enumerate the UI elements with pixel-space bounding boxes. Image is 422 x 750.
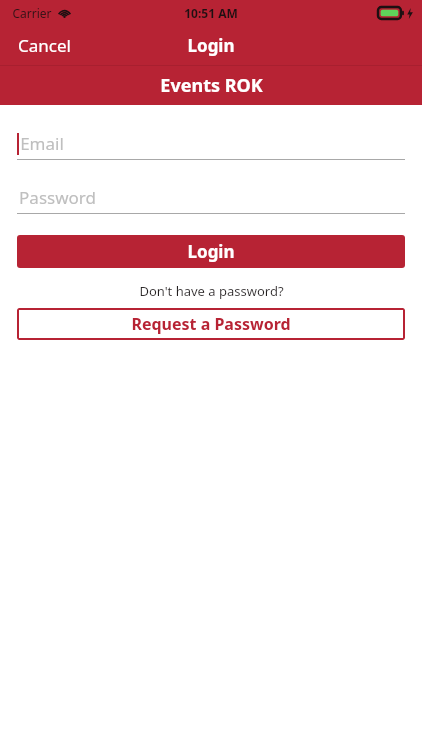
- staticText: Email: [20, 132, 64, 155]
- staticText: Cancel: [18, 34, 71, 57]
- staticText: Events ROK: [160, 73, 263, 98]
- staticText: 10:51 AM: [184, 5, 238, 21]
- staticText: Login: [187, 240, 235, 263]
- button[interactable]: Request a Password: [17, 308, 405, 340]
- button[interactable]: Login: [17, 235, 405, 268]
- button[interactable]: Password: [17, 182, 405, 214]
- button[interactable]: Email: [17, 128, 405, 160]
- staticText: Carrier: [12, 5, 52, 21]
- staticText: Login: [187, 34, 235, 57]
- button[interactable]: Cancel: [0, 28, 83, 63]
- staticText: Don't have a password?: [139, 282, 284, 300]
- staticText: Password: [19, 186, 96, 209]
- staticText: Request a Password: [131, 313, 291, 335]
